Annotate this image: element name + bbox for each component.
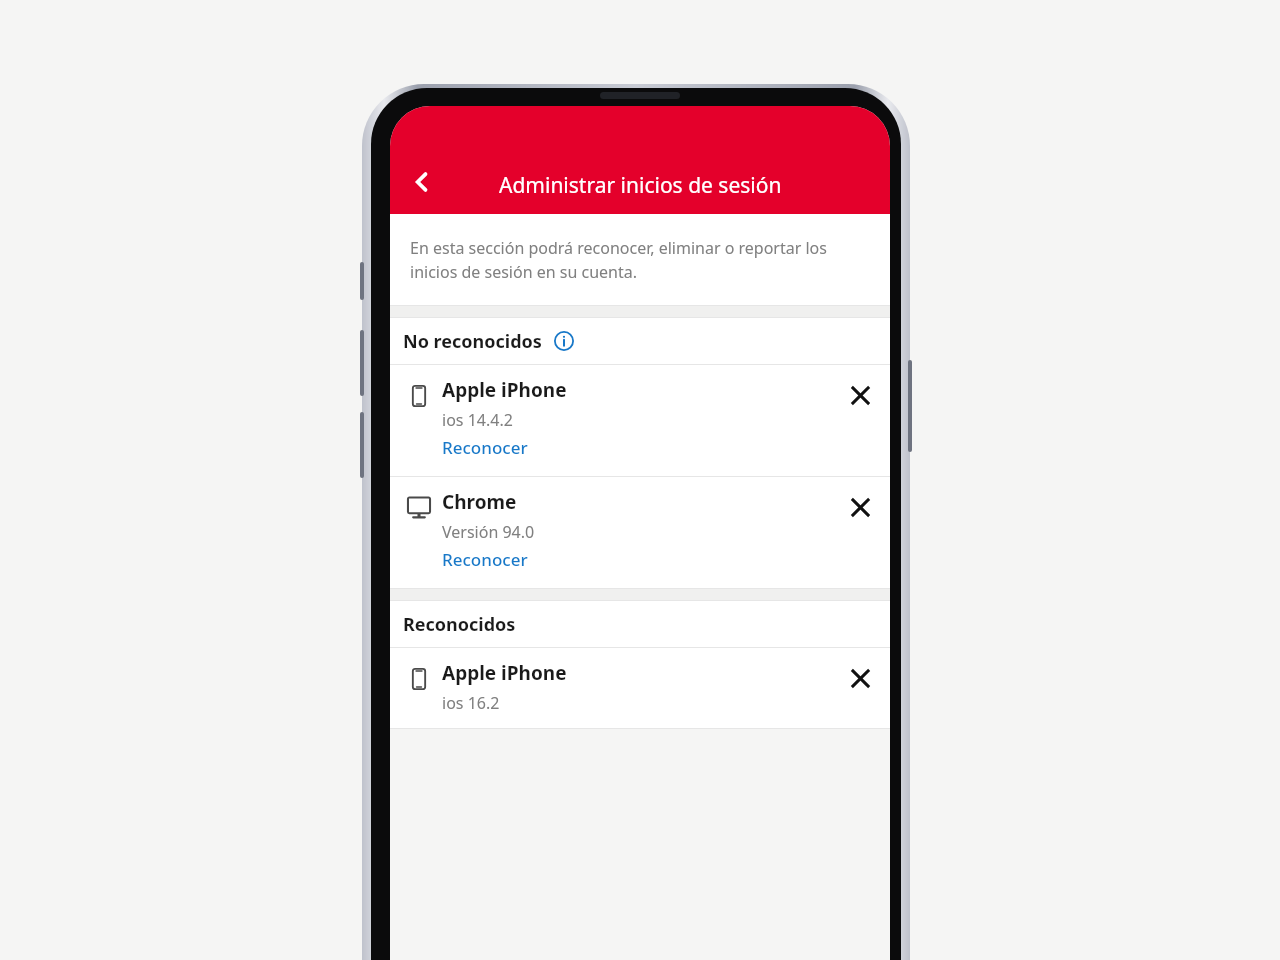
staticText: Reconocer	[442, 436, 528, 459]
button[interactable]: Reconocer	[442, 548, 528, 571]
staticText: Apple iPhone	[442, 377, 567, 403]
staticText: Reconocer	[442, 548, 528, 571]
staticText: Administrar inicios de sesión	[499, 171, 782, 200]
staticText: Reconocidos	[403, 612, 516, 637]
button[interactable]: Chrome	[390, 477, 890, 588]
button[interactable]: Eliminar	[840, 658, 880, 698]
staticText: ios 16.2	[442, 692, 500, 714]
staticText: Versión 94.0	[442, 521, 535, 543]
button[interactable]: Eliminar	[840, 487, 880, 527]
staticText: ios 14.4.2	[442, 409, 513, 431]
button[interactable]: Reconocer	[442, 436, 528, 459]
staticText: No reconocidos	[403, 329, 542, 354]
button[interactable]: Apple iPhone	[390, 648, 890, 728]
button[interactable]: Información	[551, 328, 577, 354]
staticText: Chrome	[442, 489, 517, 515]
button[interactable]: Apple iPhone	[390, 365, 890, 476]
staticText: En esta sección podrá reconocer, elimina…	[410, 237, 872, 283]
staticText: Apple iPhone	[442, 660, 567, 686]
button[interactable]: Eliminar	[840, 375, 880, 415]
button[interactable]: Back	[398, 158, 446, 206]
